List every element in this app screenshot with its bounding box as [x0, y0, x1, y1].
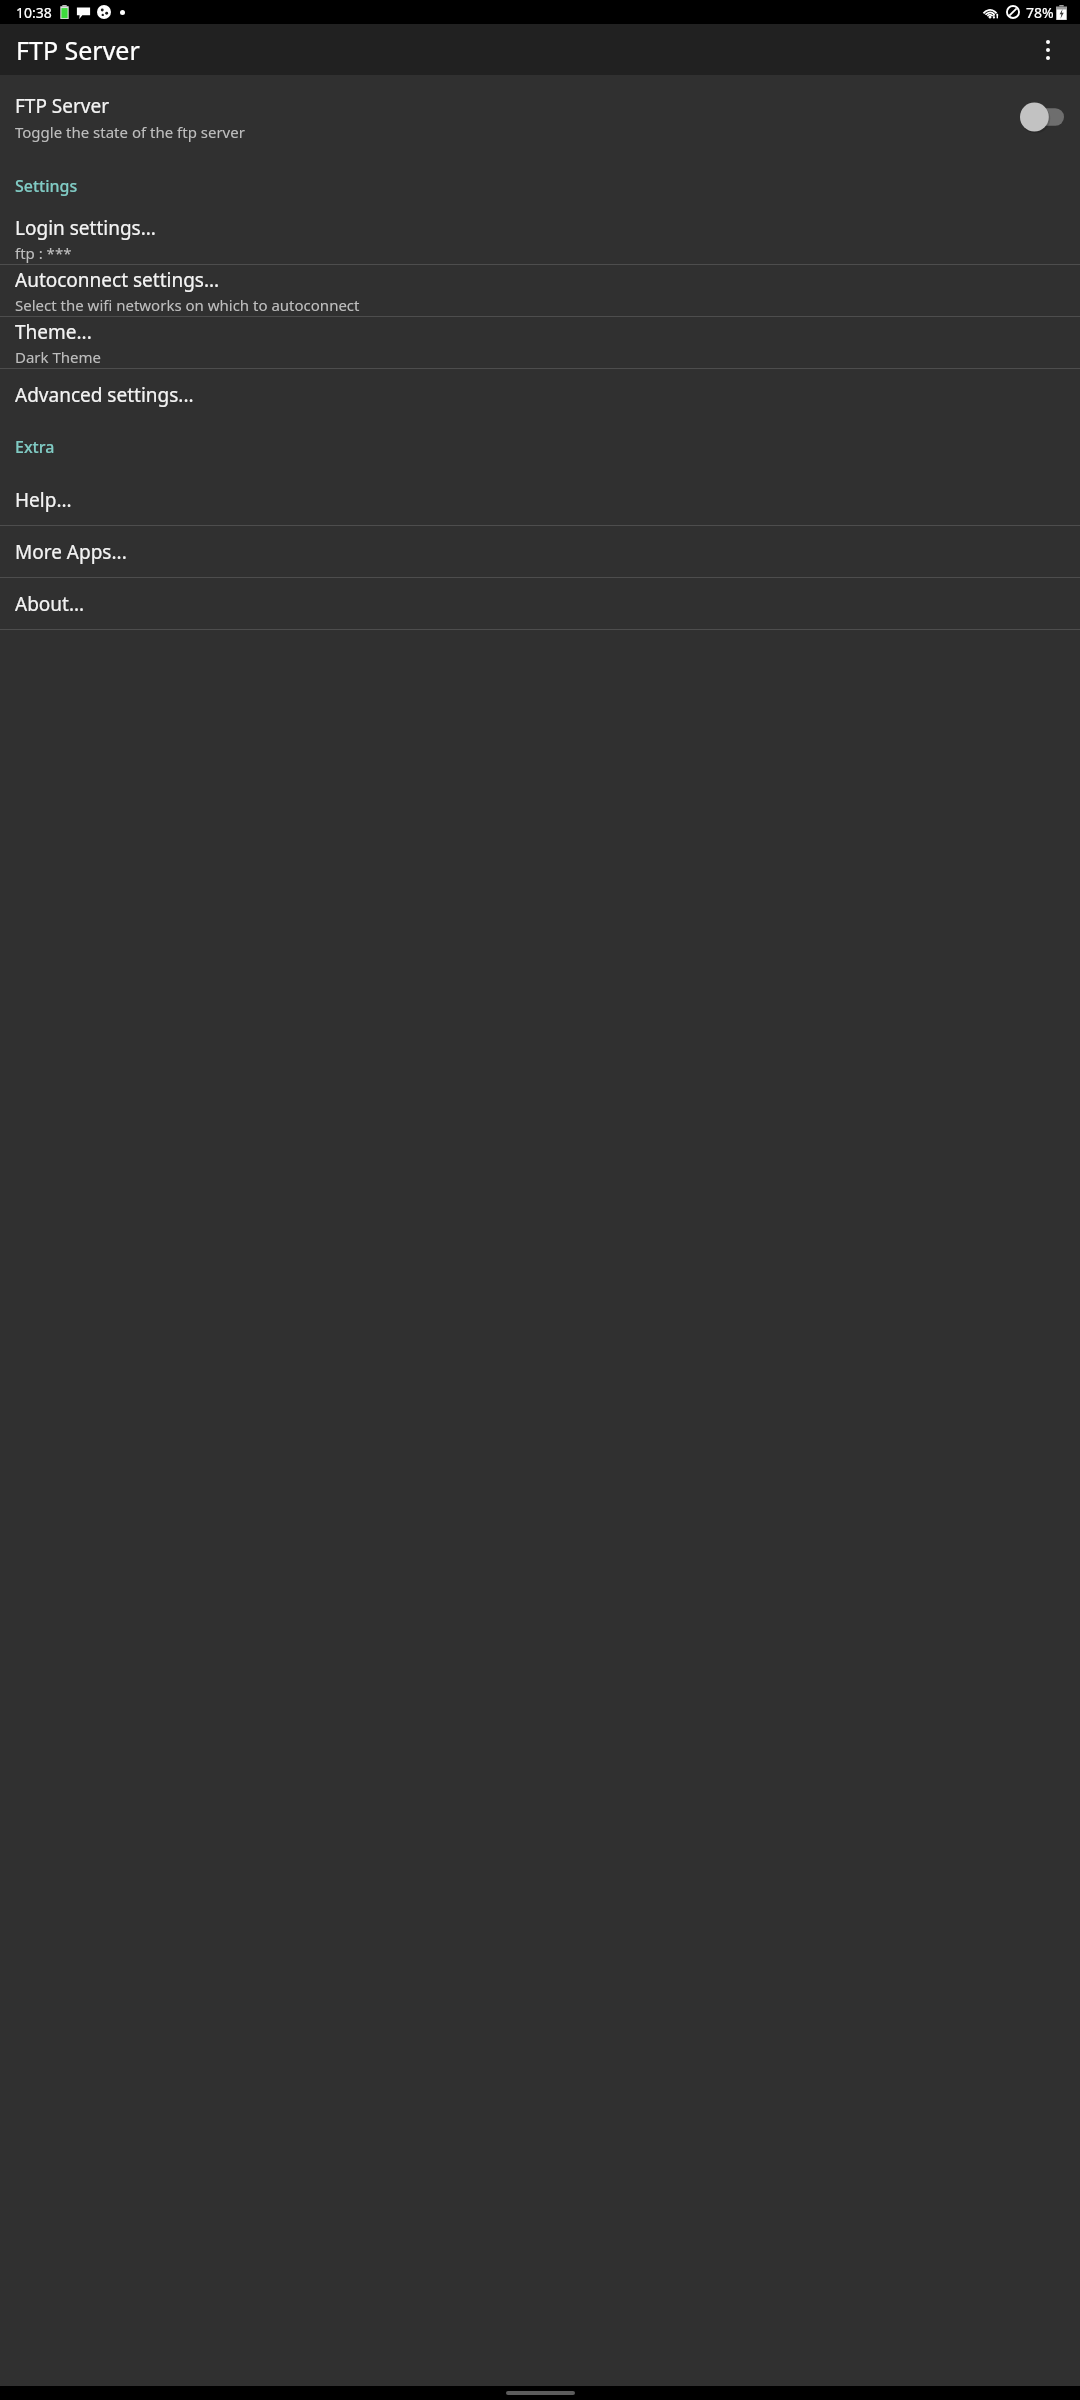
- staticText: ftp : ***: [15, 243, 72, 263]
- button[interactable]: More options: [1024, 26, 1072, 74]
- staticText: Extra: [15, 436, 55, 458]
- button[interactable]: More Apps...: [0, 526, 1080, 577]
- staticText: Advanced settings...: [15, 382, 194, 408]
- button[interactable]: Toggle FTP server: [1020, 102, 1064, 132]
- staticText: Settings: [15, 175, 78, 197]
- staticText: Theme...: [15, 319, 92, 345]
- staticText: More Apps...: [15, 539, 127, 565]
- button[interactable]: Login settings...: [0, 213, 1080, 264]
- staticText: Toggle the state of the ftp server: [15, 122, 245, 142]
- staticText: Help...: [15, 487, 72, 513]
- button[interactable]: FTP Server: [0, 75, 1080, 159]
- button[interactable]: Advanced settings...: [0, 369, 1080, 420]
- staticText: 78%: [1026, 3, 1054, 22]
- staticText: Autoconnect settings...: [15, 267, 220, 293]
- staticText: Dark Theme: [15, 347, 102, 367]
- button[interactable]: Help...: [0, 474, 1080, 525]
- button[interactable]: Autoconnect settings...: [0, 265, 1080, 316]
- staticText: Login settings...: [15, 215, 156, 241]
- staticText: About...: [15, 591, 85, 617]
- staticText: 10:38: [16, 3, 52, 22]
- staticText: FTP Server: [16, 33, 140, 67]
- button[interactable]: About...: [0, 578, 1080, 629]
- button[interactable]: Theme...: [0, 317, 1080, 368]
- staticText: Select the wifi networks on which to aut…: [15, 295, 360, 315]
- staticText: FTP Server: [15, 93, 110, 119]
